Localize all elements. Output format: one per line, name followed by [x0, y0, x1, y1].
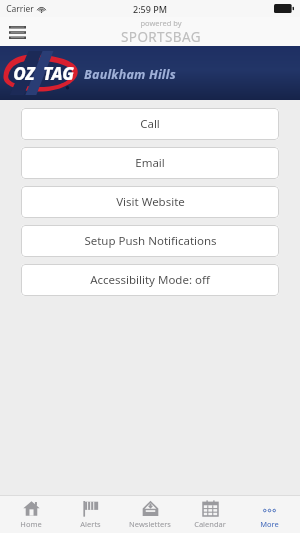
button[interactable]: Visit Website — [21, 186, 279, 218]
staticText: Carrier — [6, 3, 34, 15]
staticText: Email — [135, 155, 165, 171]
button[interactable]: More — [240, 495, 298, 533]
staticText: Home — [20, 519, 42, 529]
staticText: Calendar — [194, 519, 226, 529]
button[interactable]: Call — [21, 108, 279, 140]
staticText: More — [260, 519, 279, 529]
staticText: Alerts — [80, 519, 101, 529]
button[interactable]: Menu — [4, 19, 30, 45]
staticText: powered by — [140, 18, 182, 28]
button[interactable]: Newsletters — [121, 495, 179, 533]
button[interactable]: Setup Push Notifications — [21, 225, 279, 257]
button[interactable]: Home — [2, 495, 60, 533]
staticText: 2:59 PM — [133, 3, 167, 15]
button[interactable]: Calendar — [181, 495, 239, 533]
staticText: Setup Push Notifications — [84, 233, 217, 249]
staticText: OZ — [13, 62, 35, 85]
staticText: Baulkham Hills — [84, 66, 176, 83]
button[interactable]: Email — [21, 147, 279, 179]
button[interactable]: Alerts — [61, 495, 119, 533]
staticText: Call — [140, 116, 160, 132]
button[interactable]: Accessibility Mode: off — [21, 264, 279, 296]
staticText: Accessibility Mode: off — [90, 272, 210, 288]
staticText: Newsletters — [129, 519, 171, 529]
staticText: Visit Website — [116, 194, 185, 210]
staticText: TAG — [43, 62, 74, 85]
staticText: SPORTSBAG — [121, 28, 201, 46]
